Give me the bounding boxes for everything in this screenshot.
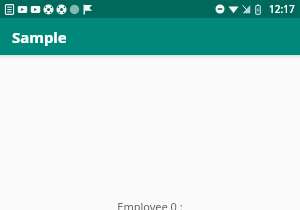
- button[interactable]: Sample: [0, 18, 300, 55]
- other: Do not disturb: [215, 4, 225, 14]
- other: Video notification: [17, 4, 28, 15]
- other: Sports notification: [56, 4, 67, 15]
- other: Mobile signal: [242, 4, 251, 14]
- other: Sports notification: [43, 4, 54, 15]
- other: Flag notification: [82, 4, 93, 15]
- staticText: 12:17: [269, 2, 295, 16]
- button[interactable]: Employee 0 :: [0, 199, 300, 210]
- other: Notification: [4, 4, 15, 15]
- staticText: Sample: [12, 27, 67, 47]
- other: Video notification: [30, 4, 41, 15]
- other: Wi-Fi: [228, 4, 239, 14]
- other: Battery charging: [254, 4, 262, 15]
- other: Notification: [69, 4, 80, 15]
